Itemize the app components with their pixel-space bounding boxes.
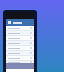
button[interactable] bbox=[6, 61, 34, 63]
button[interactable] bbox=[6, 51, 34, 55]
button[interactable] bbox=[6, 26, 34, 30]
button[interactable] bbox=[6, 56, 34, 60]
button[interactable] bbox=[6, 46, 34, 50]
button[interactable] bbox=[6, 41, 34, 45]
button[interactable] bbox=[6, 31, 34, 35]
button[interactable]: Menu bbox=[6, 19, 34, 26]
button[interactable] bbox=[6, 36, 34, 40]
